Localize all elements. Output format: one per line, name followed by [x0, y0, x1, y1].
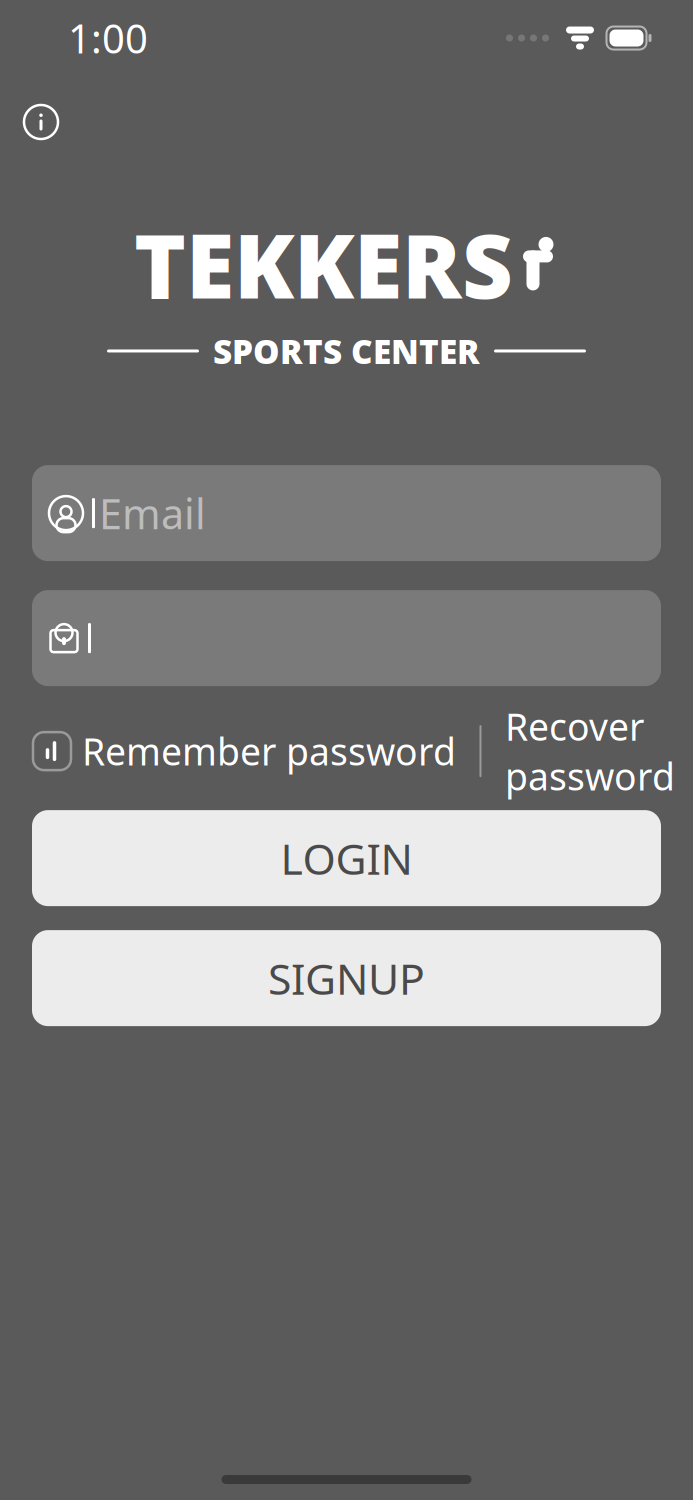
button[interactable]: Recover password [505, 701, 675, 801]
button[interactable]: Remember password [32, 726, 456, 776]
staticText: Recover password [505, 701, 675, 801]
staticText: LOGIN [280, 830, 412, 886]
button[interactable] [32, 590, 661, 686]
button[interactable]: Email [32, 465, 661, 561]
button[interactable]: SIGNUP [32, 930, 661, 1026]
button[interactable]: LOGIN [32, 810, 661, 906]
staticText: SIGNUP [268, 950, 425, 1006]
staticText: 1:00 [68, 11, 148, 64]
staticText: SPORTS CENTER [213, 329, 480, 373]
button[interactable]: Information [19, 100, 63, 144]
staticText: Remember password [82, 726, 456, 776]
staticText: TEKKERS [134, 206, 513, 323]
staticText: Email [99, 486, 206, 541]
